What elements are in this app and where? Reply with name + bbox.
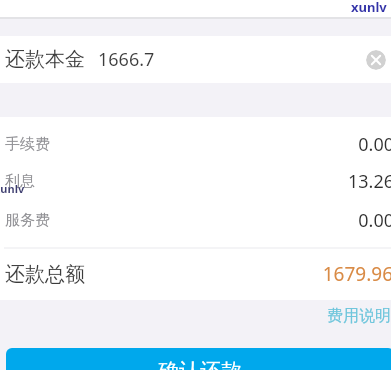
- button[interactable]: 费用说明: [323, 306, 391, 326]
- staticText: 还款总额: [5, 262, 85, 287]
- button[interactable]: 确认还款: [6, 348, 391, 370]
- button[interactable]: Clear amount: [366, 50, 386, 70]
- staticText: 确认还款: [158, 358, 242, 370]
- button[interactable]: 服务费: [0, 202, 391, 238]
- staticText: 0.00: [291, 208, 391, 233]
- staticText: 0.00: [291, 132, 391, 157]
- staticText: 13.26: [291, 169, 391, 194]
- staticText: 手续费: [5, 135, 50, 154]
- button[interactable]: 利息: [0, 163, 391, 199]
- staticText: 服务费: [5, 211, 50, 230]
- staticText: 还款本金: [5, 47, 85, 72]
- button[interactable]: 还款本金: [0, 36, 391, 83]
- staticText: xunlv: [351, 0, 387, 16]
- staticText: 1679.96: [290, 261, 391, 287]
- staticText: 费用说明: [327, 306, 391, 326]
- button[interactable]: 手续费: [0, 126, 391, 162]
- staticText: xunlv: [0, 181, 25, 196]
- staticText: 利息: [5, 172, 35, 191]
- staticText: 1666.7: [98, 47, 155, 72]
